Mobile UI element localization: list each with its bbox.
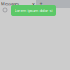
button[interactable]: Messages xyxy=(0,0,18,5)
staticText: + xyxy=(39,0,42,8)
button[interactable]: Add xyxy=(0,0,3,7)
staticText: x xyxy=(32,0,35,8)
button[interactable]: Profile xyxy=(0,0,4,4)
button[interactable]: Lorem ipsum dolor si xyxy=(0,0,45,11)
staticText: Lorem ipsum dolor si xyxy=(14,8,52,13)
button[interactable]: Close xyxy=(0,0,3,7)
staticText: Messages xyxy=(1,1,19,6)
